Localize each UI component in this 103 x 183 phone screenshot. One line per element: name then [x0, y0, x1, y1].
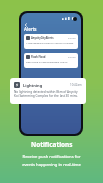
- staticText: 10:42am: [70, 83, 82, 87]
- staticText: Notifications: [31, 140, 73, 149]
- staticText: Receive push notifications for events ha…: [22, 154, 81, 167]
- staticText: Alerts: [24, 26, 37, 32]
- button[interactable]: Lightning: [10, 78, 86, 104]
- staticText: Flash Flood: [31, 55, 46, 59]
- staticText: AnycityCityAlerts: [31, 36, 54, 40]
- button[interactable]: AnycityCityAlerts: [24, 34, 78, 49]
- staticText: A new lifeguard roster for Anycity North…: [26, 42, 74, 47]
- staticText: Lightning: [23, 83, 43, 88]
- staticText: Flash Flood in Snap Bruwndale. Due to ex…: [26, 61, 68, 66]
- button[interactable]: Back: [22, 21, 29, 28]
- button[interactable]: Flash Flood: [24, 53, 78, 68]
- staticText: 9:41am: [68, 37, 76, 40]
- staticText: No lightning detected within 8km of Anyc…: [14, 90, 82, 98]
- staticText: 9:41am: [68, 56, 76, 59]
